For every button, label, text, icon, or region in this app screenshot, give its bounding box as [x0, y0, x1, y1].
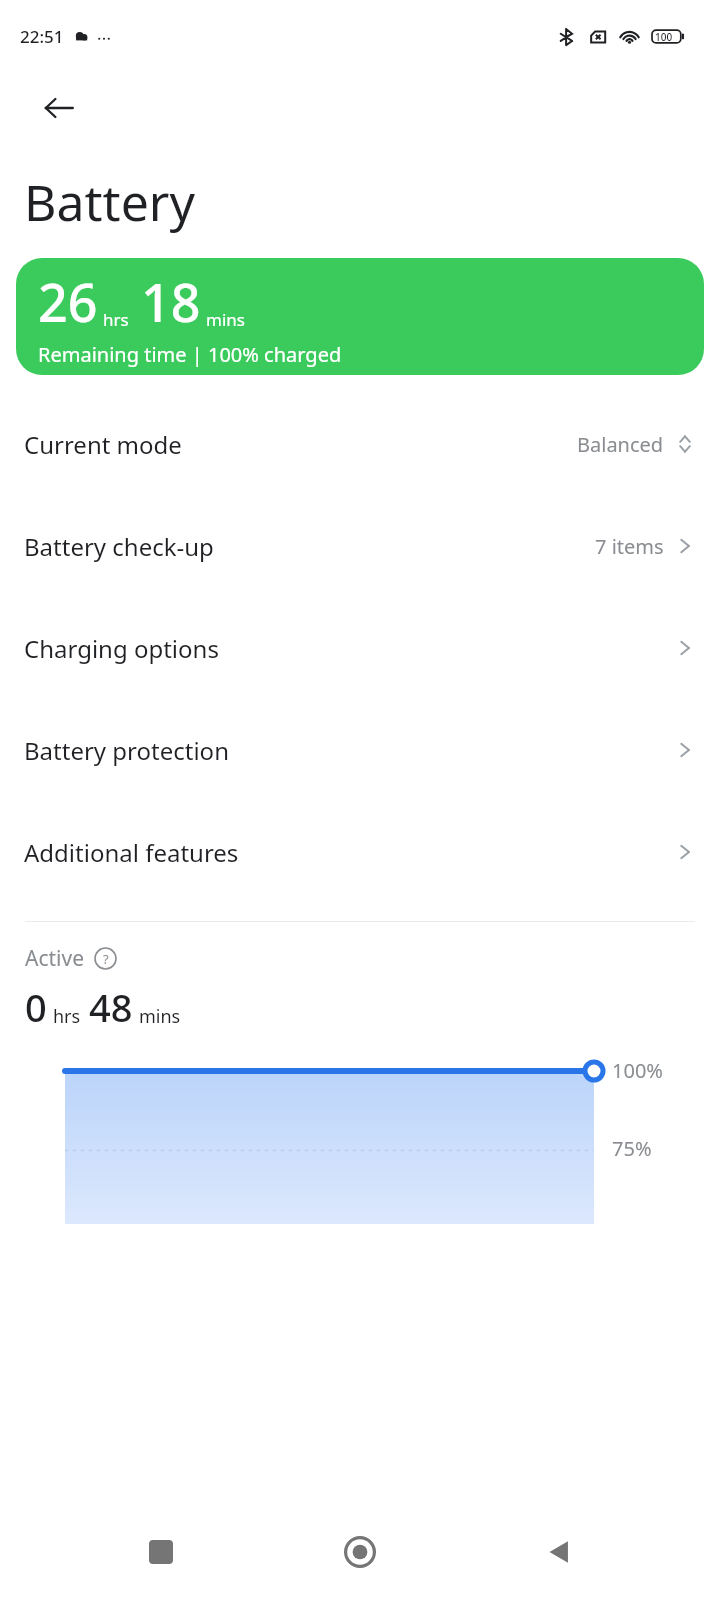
button[interactable]: Recent apps	[123, 1514, 199, 1590]
staticText: 22:51	[20, 25, 64, 48]
staticText: mins	[206, 308, 245, 331]
staticText: 100%	[612, 1057, 663, 1084]
staticText: Charging options	[24, 632, 219, 665]
staticText: 18	[141, 266, 201, 337]
staticText: Battery check-up	[24, 530, 214, 563]
staticText: Battery protection	[24, 734, 229, 767]
staticText: 100	[655, 30, 673, 44]
button[interactable]: Help about active time	[94, 947, 117, 970]
button[interactable]: 26	[16, 258, 704, 375]
button[interactable]: Back	[0, 72, 720, 144]
staticText: Remaining time | 100% charged	[38, 341, 342, 368]
staticText: ?	[103, 950, 109, 968]
staticText: mins	[139, 1004, 181, 1029]
staticText: 0	[25, 981, 47, 1033]
staticText: Balanced	[577, 431, 664, 458]
button[interactable]: Battery check-up	[0, 495, 720, 597]
button[interactable]: Charging options	[0, 597, 720, 699]
staticText: Additional features	[24, 836, 239, 869]
staticText: 26	[38, 266, 98, 337]
button[interactable]: Additional features	[0, 801, 720, 903]
staticText: Active	[25, 944, 85, 973]
staticText: 75%	[612, 1135, 652, 1162]
button[interactable]: Current mode	[0, 393, 720, 495]
staticText: Current mode	[24, 428, 182, 461]
button[interactable]: Battery protection	[0, 699, 720, 801]
staticText: 7 items	[595, 533, 664, 560]
staticText: hrs	[103, 308, 129, 331]
button[interactable]: Home	[322, 1514, 398, 1590]
staticText: Battery	[24, 168, 195, 236]
staticText: hrs	[53, 1004, 81, 1029]
button[interactable]: Back	[521, 1514, 597, 1590]
staticText: 48	[89, 981, 133, 1033]
